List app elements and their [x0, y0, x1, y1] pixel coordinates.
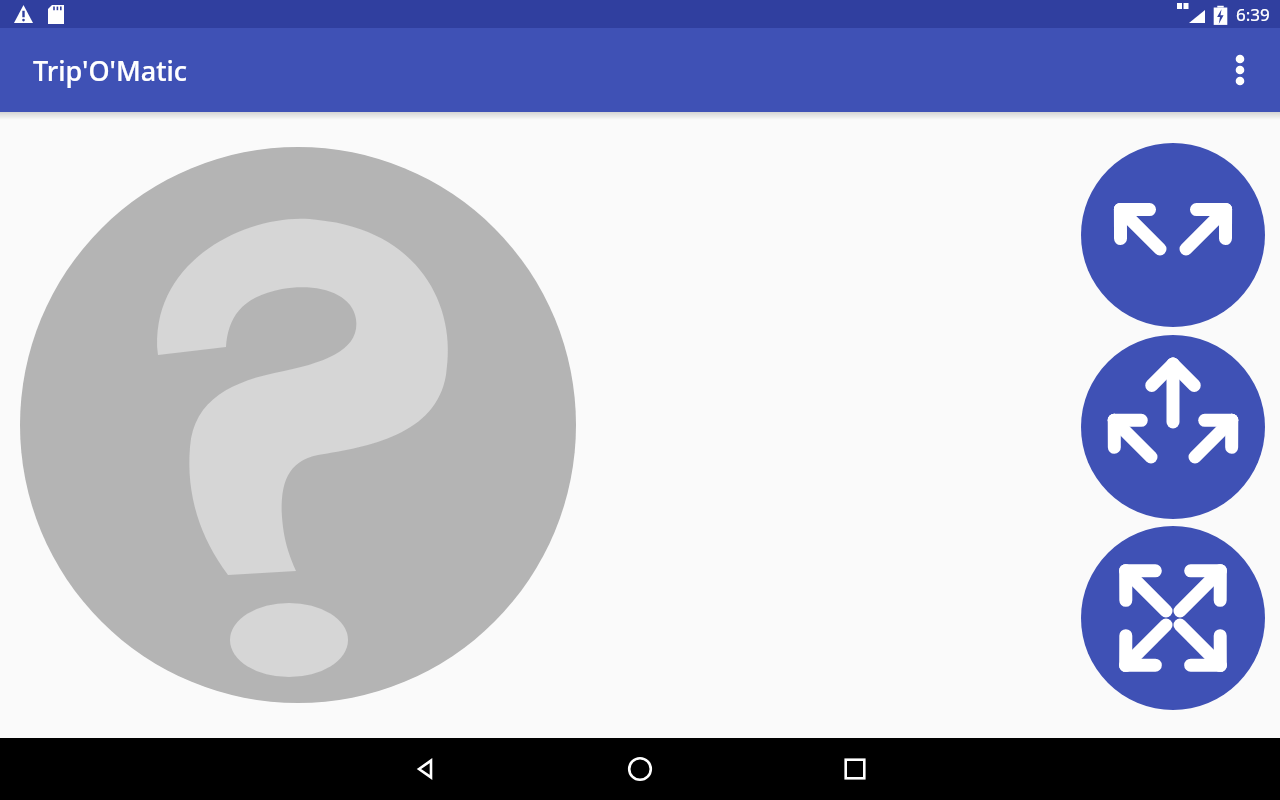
button[interactable]: Destination photo placeholder — [0, 112, 1280, 738]
button[interactable]: Medium trip — [1081, 335, 1265, 519]
button[interactable]: More options — [1214, 44, 1266, 96]
button[interactable]: Short trip — [1081, 143, 1265, 327]
staticText: 6:39 — [1236, 3, 1270, 26]
button[interactable]: Back — [394, 738, 456, 800]
button[interactable]: Home — [609, 738, 671, 800]
staticText: Trip'O'Matic — [33, 52, 188, 89]
button[interactable]: Recent apps — [824, 738, 886, 800]
button[interactable]: Long trip — [1081, 526, 1265, 710]
